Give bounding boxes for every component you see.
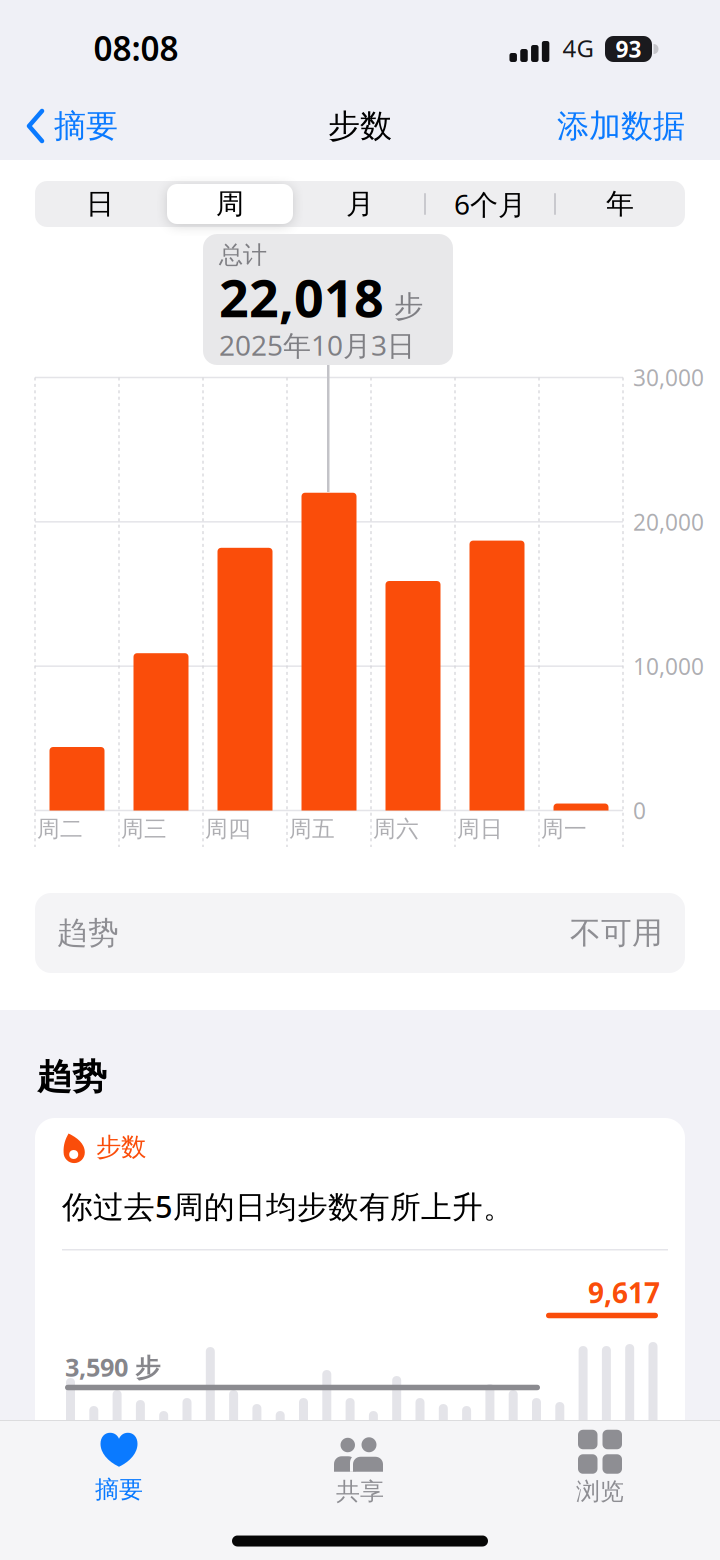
staticText: 你过去5周的日均步数有所上升。 [62,1186,514,1226]
staticText: 10,000 [633,651,704,681]
staticText: 20,000 [633,507,704,537]
staticText: 22,018 [219,262,384,332]
button[interactable]: 月 [295,181,425,227]
staticText: 步数 [96,1131,146,1162]
button[interactable]: 共享 [280,1423,440,1513]
staticText: 日 [86,187,114,221]
staticText: 9,617 [588,1274,660,1311]
button[interactable]: 添加数据 [557,106,685,146]
staticText: 周一 [541,815,587,843]
button[interactable]: 日 [35,181,165,227]
button[interactable]: 浏览 [520,1423,680,1513]
staticText: 步数 [328,106,392,146]
staticText: 6个月 [454,185,526,223]
staticText: 周五 [289,815,335,843]
staticText: 3,590 步 [65,1350,160,1384]
staticText: 年 [606,187,634,221]
staticText: 93 [615,34,641,64]
staticText: 步 [394,288,423,324]
staticText: 月 [346,187,374,221]
button[interactable]: 摘要 [26,106,118,146]
staticText: 2025年10月3日 [219,326,415,364]
button[interactable]: 6个月 [425,181,555,227]
staticText: 共享 [336,1477,384,1506]
staticText: 添加数据 [557,106,685,146]
staticText: 周三 [121,815,167,843]
button[interactable]: 周 [165,181,295,227]
staticText: 0 [633,795,646,825]
staticText: 周二 [37,815,83,843]
staticText: 摘要 [54,106,118,146]
staticText: 趋势 [57,914,119,952]
staticText: 周六 [373,815,419,843]
staticText: 浏览 [576,1477,624,1506]
staticText: 30,000 [633,362,704,392]
button[interactable]: 年 [555,181,685,227]
staticText: 4G [562,32,593,64]
staticText: 周 [216,187,244,221]
button[interactable]: 摘要 [39,1423,199,1513]
staticText: 周四 [205,815,251,843]
button[interactable]: 趋势 [35,893,685,973]
staticText: 周日 [457,815,503,843]
staticText: 不可用 [570,914,663,952]
staticText: 摘要 [95,1475,143,1504]
staticText: 趋势 [37,1056,107,1098]
staticText: 08:08 [93,26,178,70]
staticText: 总计 [219,240,267,270]
